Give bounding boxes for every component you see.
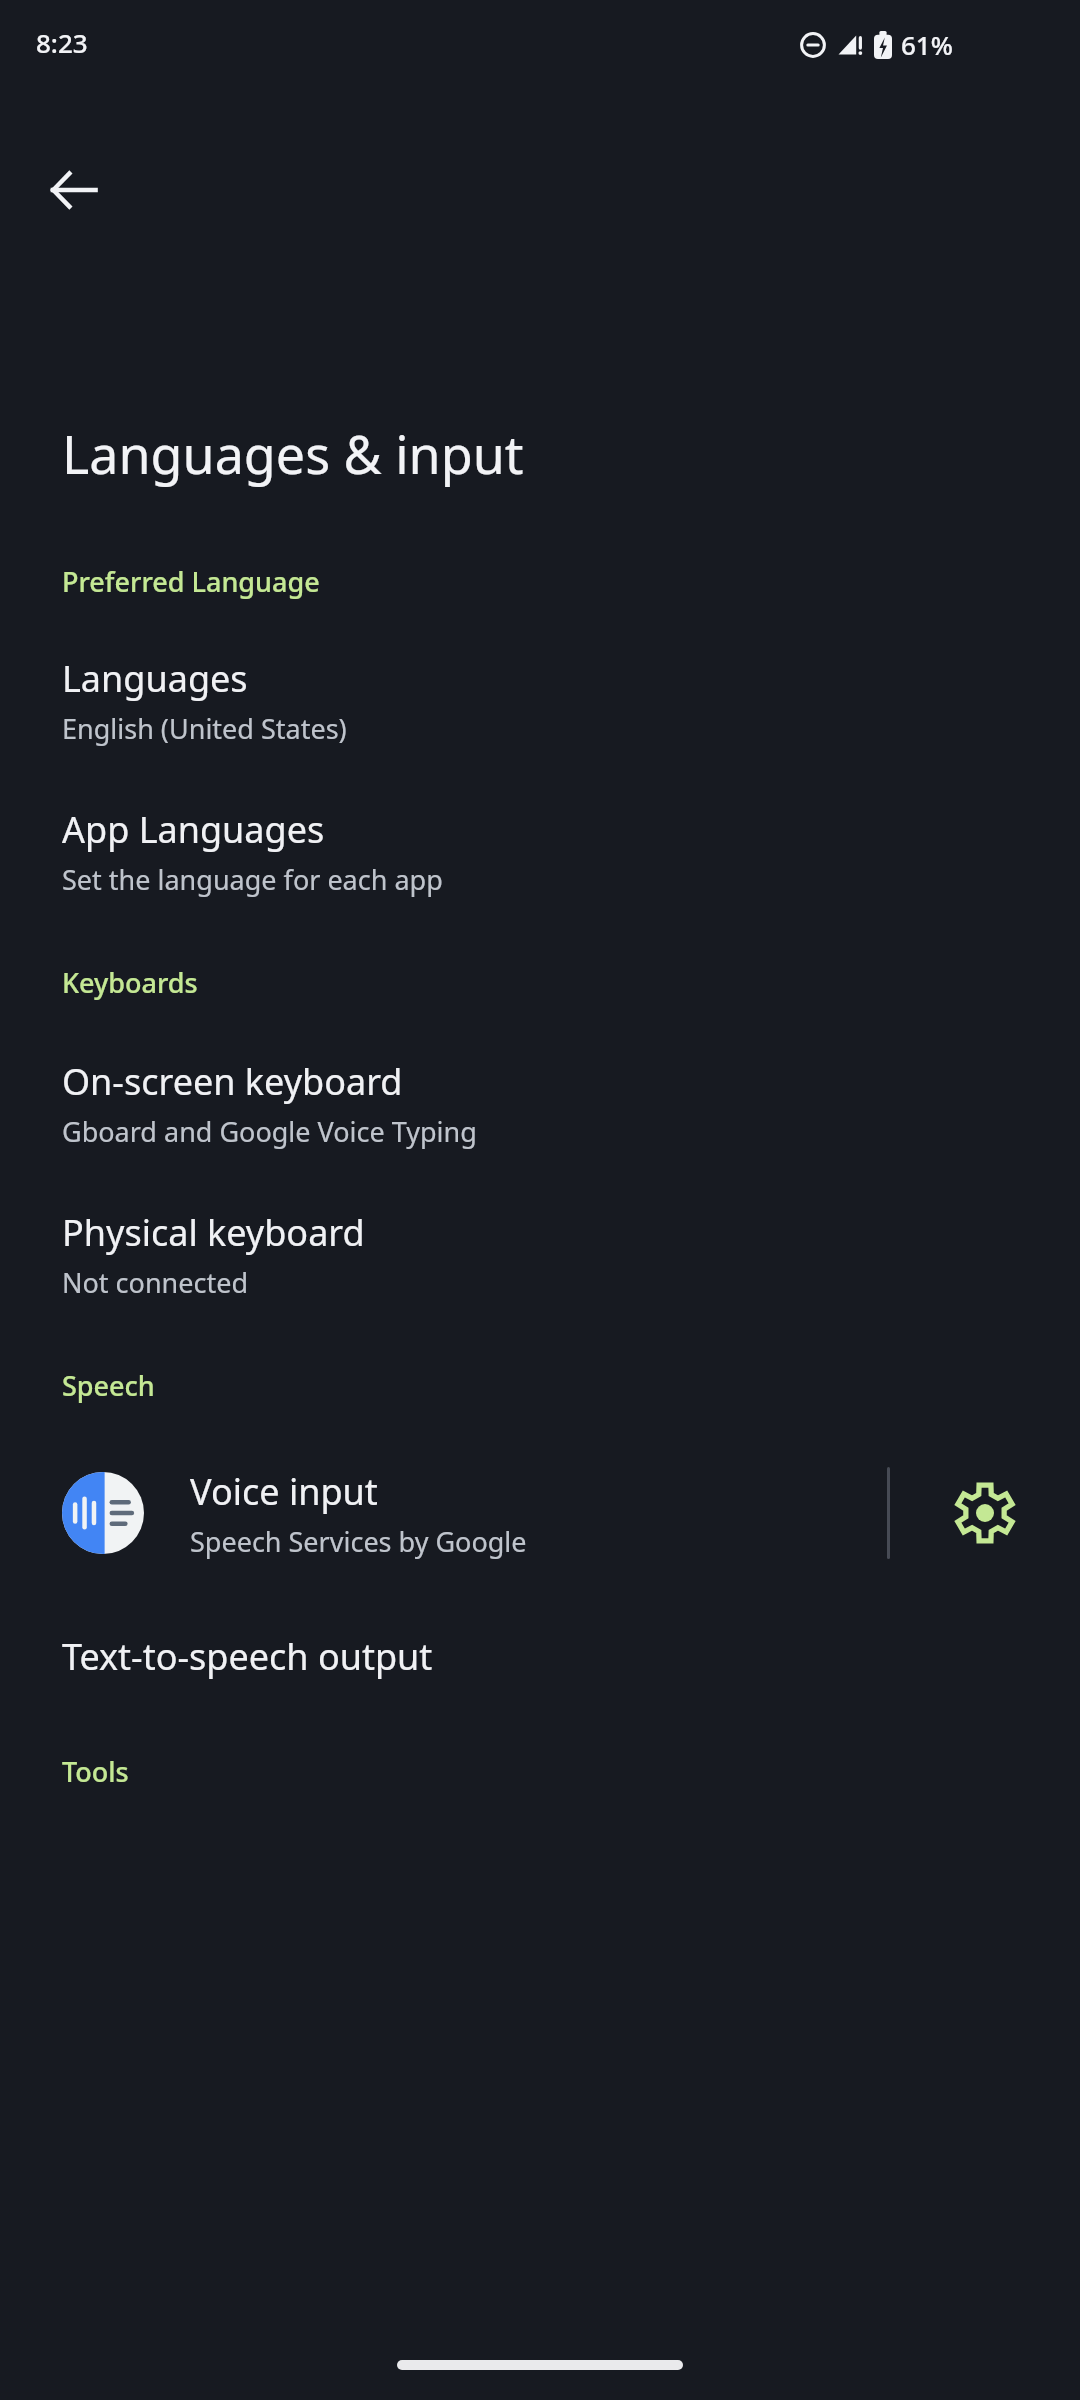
staticText: Text-to-speech output bbox=[62, 1632, 433, 1681]
button[interactable]: Physical keyboard bbox=[0, 1208, 1080, 1301]
staticText: 8:23 bbox=[36, 25, 88, 60]
staticText: Set the language for each app bbox=[62, 861, 443, 898]
staticText: Tools bbox=[62, 1753, 129, 1790]
button[interactable]: Back bbox=[26, 142, 122, 238]
staticText: 61% bbox=[901, 27, 953, 62]
button[interactable]: On-screen keyboard bbox=[0, 1057, 1080, 1150]
staticText: Speech Services by Google bbox=[190, 1523, 527, 1560]
staticText: Not connected bbox=[62, 1264, 249, 1301]
staticText: Preferred Language bbox=[62, 563, 320, 600]
staticText: English (United States) bbox=[62, 710, 347, 747]
staticText: Languages bbox=[62, 654, 248, 703]
staticText: App Languages bbox=[62, 805, 325, 854]
staticText: Keyboards bbox=[62, 964, 198, 1001]
staticText: On-screen keyboard bbox=[62, 1057, 403, 1106]
staticText: Voice input bbox=[190, 1467, 378, 1516]
button[interactable]: Voice input settings bbox=[890, 1438, 1080, 1588]
button[interactable]: Text-to-speech output bbox=[0, 1632, 1080, 1681]
staticText: Gboard and Google Voice Typing bbox=[62, 1113, 477, 1150]
staticText: Languages & input bbox=[62, 418, 524, 489]
button[interactable]: App Languages bbox=[0, 805, 1080, 898]
staticText: Physical keyboard bbox=[62, 1208, 365, 1257]
button[interactable]: Languages bbox=[0, 654, 1080, 747]
staticText: Speech bbox=[62, 1367, 155, 1404]
button[interactable]: Voice input bbox=[0, 1438, 887, 1588]
